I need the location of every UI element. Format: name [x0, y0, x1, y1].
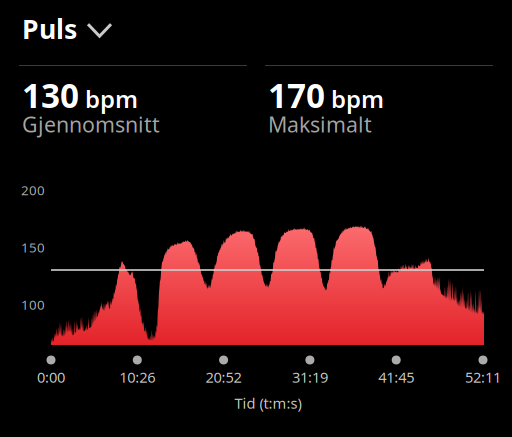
staticText: 10:26 [119, 367, 155, 387]
staticText: Gjennomsnitt [22, 110, 160, 138]
staticText: 200 [21, 181, 45, 199]
staticText: 150 [21, 238, 45, 256]
staticText: 20:52 [206, 367, 242, 387]
staticText: 100 [21, 296, 45, 313]
staticText: Tid (t:m:s) [234, 393, 301, 413]
staticText: 41:45 [378, 367, 414, 387]
staticText: 130 [22, 73, 79, 117]
staticText: bpm [85, 83, 138, 115]
staticText: 0:00 [37, 367, 65, 387]
button[interactable]: Puls [0, 0, 127, 58]
staticText: Maksimalt [268, 110, 372, 138]
staticText: Puls [22, 11, 77, 46]
staticText: 170 [268, 73, 325, 117]
staticText: 52:11 [465, 367, 501, 387]
staticText: 31:19 [292, 367, 328, 387]
staticText: bpm [331, 83, 384, 115]
